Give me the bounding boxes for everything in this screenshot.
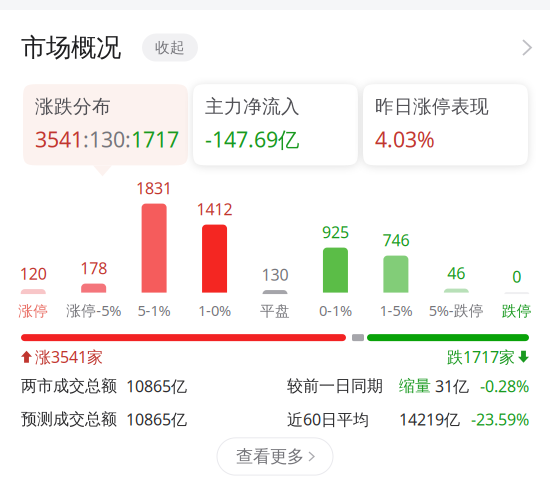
staticText: 5%-跌停 bbox=[429, 301, 484, 320]
staticText: :130: bbox=[83, 125, 131, 153]
staticText: 涨3541家 bbox=[35, 346, 103, 367]
staticText: 收起 bbox=[155, 39, 185, 57]
button[interactable]: 收起 bbox=[142, 34, 198, 62]
staticText: 3541 bbox=[35, 125, 83, 153]
staticText: 涨停 bbox=[18, 302, 48, 320]
staticText: 4.03% bbox=[375, 125, 435, 153]
staticText: 0 bbox=[512, 266, 521, 287]
staticText: 查看更多 bbox=[236, 446, 304, 467]
staticText: 昨日涨停表现 bbox=[375, 95, 489, 118]
staticText: 1717 bbox=[131, 125, 179, 153]
staticText: 14219亿 bbox=[399, 409, 460, 430]
staticText: 46 bbox=[447, 262, 465, 284]
staticText: 涨跌分布 bbox=[35, 95, 111, 118]
staticText: 跌1717家 bbox=[447, 346, 515, 367]
staticText: 0-1% bbox=[319, 301, 352, 320]
staticText: 1412 bbox=[197, 198, 233, 220]
staticText: 较前一日同期 bbox=[287, 376, 383, 396]
staticText: 两市成交总额 bbox=[21, 376, 117, 396]
staticText: 120 bbox=[20, 263, 47, 284]
staticText: 10865亿 bbox=[126, 375, 187, 396]
button[interactable]: 查看更多 bbox=[217, 438, 333, 475]
staticText: 近60日平均 bbox=[287, 409, 369, 430]
staticText: -147.69亿 bbox=[205, 125, 299, 153]
staticText: 跌停 bbox=[502, 302, 532, 320]
staticText: 预测成交总额 bbox=[21, 409, 117, 429]
staticText: -0.28% bbox=[480, 375, 529, 396]
staticText: 涨停-5% bbox=[66, 301, 121, 320]
staticText: -23.59% bbox=[471, 409, 529, 430]
staticText: 市场概况 bbox=[21, 32, 121, 63]
staticText: 178 bbox=[80, 257, 107, 279]
staticText: 10865亿 bbox=[126, 409, 187, 430]
staticText: 746 bbox=[382, 229, 409, 251]
staticText: 1-0% bbox=[198, 301, 231, 320]
button[interactable]: 展开详情 bbox=[516, 33, 538, 62]
staticText: 1-5% bbox=[379, 301, 412, 320]
staticText: 5-1% bbox=[138, 301, 171, 320]
staticText: 平盘 bbox=[260, 302, 290, 320]
staticText: 130 bbox=[261, 264, 288, 285]
staticText: 1831 bbox=[136, 177, 172, 199]
staticText: 主力净流入 bbox=[205, 95, 300, 118]
staticText: 925 bbox=[322, 221, 349, 243]
staticText: 缩量 bbox=[399, 376, 431, 396]
staticText: 31亿 bbox=[435, 375, 469, 396]
